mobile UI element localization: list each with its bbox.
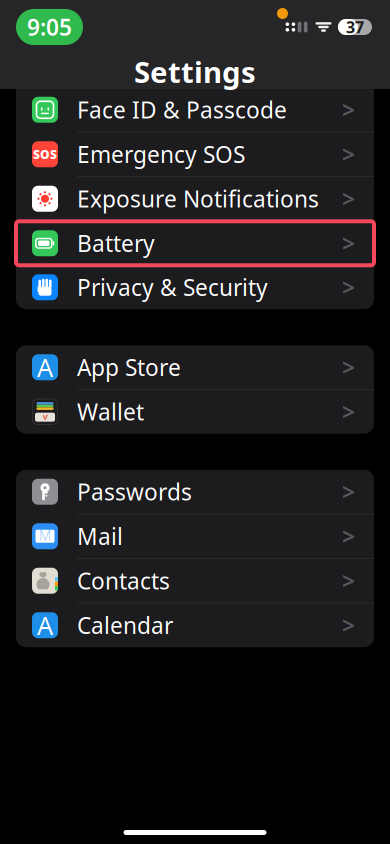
staticText: Battery bbox=[77, 228, 155, 258]
staticText: Passwords bbox=[77, 477, 192, 507]
staticText: > bbox=[342, 139, 355, 169]
staticText: v bbox=[42, 410, 47, 422]
staticText: Face ID & Passcode bbox=[77, 95, 287, 125]
button[interactable]: Face ID & Passcode bbox=[16, 88, 374, 132]
staticText: Privacy & Security bbox=[77, 272, 268, 302]
staticText: > bbox=[342, 6, 355, 36]
staticText: Siri & Search bbox=[77, 50, 211, 80]
staticText: A bbox=[37, 608, 53, 642]
staticText: > bbox=[342, 521, 355, 551]
staticText: v bbox=[37, 15, 42, 26]
staticText: > bbox=[342, 352, 355, 382]
button[interactable]: Passwords bbox=[16, 470, 374, 514]
button[interactable]: v bbox=[16, 0, 374, 43]
staticText: > bbox=[342, 228, 355, 258]
button[interactable]: Battery bbox=[16, 221, 374, 265]
button[interactable]: Contacts bbox=[16, 559, 374, 603]
staticText: SOS bbox=[33, 146, 57, 162]
staticText: 37 bbox=[346, 16, 364, 38]
staticText: > bbox=[342, 397, 355, 427]
button[interactable]: Exposure Notifications bbox=[16, 177, 374, 221]
staticText: > bbox=[342, 272, 355, 302]
button[interactable]: A bbox=[16, 345, 374, 389]
button[interactable]: v bbox=[16, 390, 374, 434]
staticText: Mail bbox=[77, 521, 123, 551]
staticText: > bbox=[342, 95, 355, 125]
staticText: 9:05 bbox=[27, 12, 72, 42]
staticText: Calendar bbox=[77, 610, 173, 640]
staticText: M bbox=[39, 525, 51, 544]
staticText: > bbox=[342, 610, 355, 640]
button[interactable]: M bbox=[16, 514, 374, 558]
staticText: ◗ bbox=[318, 16, 329, 38]
staticText: Wallet bbox=[77, 397, 144, 427]
button[interactable]: SOS bbox=[16, 132, 374, 176]
staticText: Settings bbox=[134, 52, 256, 91]
button[interactable]: A bbox=[16, 603, 374, 647]
staticText: App Store bbox=[77, 352, 181, 382]
staticText: > bbox=[342, 477, 355, 507]
staticText: A bbox=[37, 350, 53, 384]
staticText: Emergency SOS bbox=[77, 139, 245, 169]
staticText: Exposure Notifications bbox=[77, 184, 319, 214]
staticText: StandBy bbox=[77, 6, 165, 36]
staticText: > bbox=[342, 184, 355, 214]
staticText: Contacts bbox=[77, 566, 170, 596]
button[interactable]: Privacy & Security bbox=[16, 265, 374, 309]
staticText: > bbox=[342, 566, 355, 596]
button[interactable]: Siri & Search bbox=[16, 43, 374, 87]
